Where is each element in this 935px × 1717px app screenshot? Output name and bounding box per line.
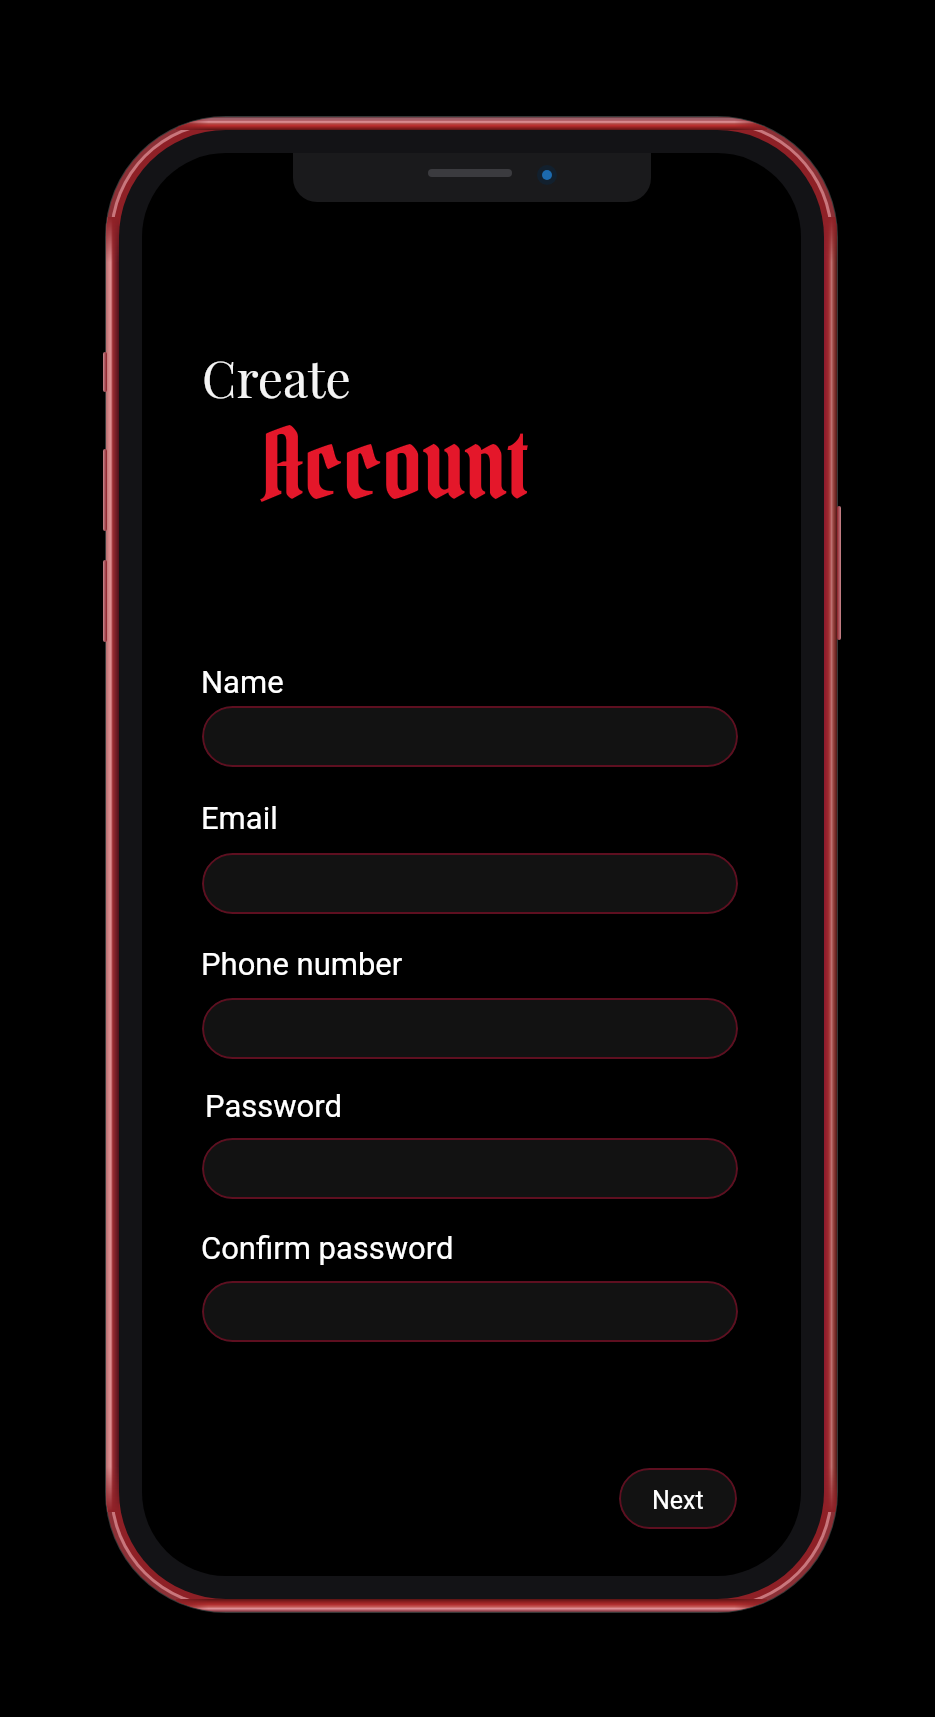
button[interactable] bbox=[202, 853, 738, 914]
staticText: Confirm password bbox=[201, 1230, 454, 1266]
button[interactable]: Next bbox=[619, 1468, 737, 1529]
staticText: Name bbox=[201, 664, 284, 700]
staticText: Password bbox=[205, 1088, 342, 1124]
staticText: Next bbox=[652, 1486, 704, 1515]
button[interactable] bbox=[202, 1281, 738, 1342]
button[interactable] bbox=[202, 998, 738, 1059]
staticText: Account bbox=[261, 401, 528, 526]
button[interactable] bbox=[202, 1138, 738, 1199]
staticText: Phone number bbox=[201, 946, 403, 982]
staticText: Email bbox=[201, 800, 278, 836]
button[interactable] bbox=[202, 706, 738, 767]
staticText: Create bbox=[202, 344, 351, 411]
